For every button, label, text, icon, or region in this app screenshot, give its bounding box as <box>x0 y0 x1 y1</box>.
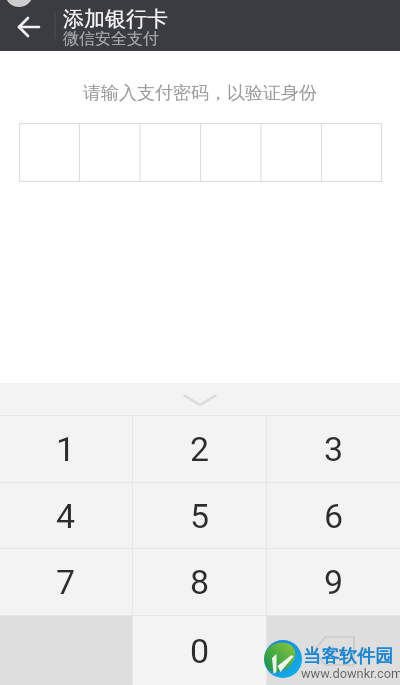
button[interactable]: Password digit 5 <box>260 123 321 182</box>
button[interactable]: 2 <box>133 416 266 482</box>
staticText: 6 <box>324 496 344 536</box>
staticText: 9 <box>324 562 344 602</box>
staticText: 3 <box>324 429 344 469</box>
staticText: 0 <box>190 631 210 671</box>
button[interactable]: 4 <box>0 483 132 548</box>
button[interactable]: 8 <box>133 549 266 615</box>
button[interactable]: Password digit 6 <box>321 123 382 182</box>
staticText: 7 <box>56 562 76 602</box>
button[interactable]: 1 <box>0 416 132 482</box>
button[interactable]: Password digit 4 <box>199 123 260 182</box>
button[interactable]: 0 <box>133 616 266 685</box>
staticText: 添加银行卡 <box>63 6 168 32</box>
button[interactable]: Password digit 2 <box>79 123 139 182</box>
button[interactable]: 7 <box>0 549 132 615</box>
button[interactable]: 5 <box>133 483 266 548</box>
button[interactable]: 9 <box>267 549 400 615</box>
staticText: 当客软件园 <box>303 645 393 668</box>
staticText: www.downkr.com <box>301 666 400 681</box>
button[interactable]: Back <box>0 0 56 51</box>
staticText: 微信安全支付 <box>63 29 159 49</box>
staticText: 4 <box>56 496 76 536</box>
staticText: 5 <box>190 496 210 536</box>
button[interactable]: Password digit 1 <box>19 123 79 182</box>
button[interactable]: Delete <box>267 616 400 685</box>
button[interactable]: Password digit 3 <box>139 123 199 182</box>
button[interactable]: 3 <box>267 416 400 482</box>
staticText: 1 <box>56 429 76 469</box>
staticText: 8 <box>190 562 210 602</box>
staticText: 请输入支付密码，以验证身份 <box>0 82 400 105</box>
button[interactable]: 6 <box>267 483 400 548</box>
staticText: 2 <box>190 429 210 469</box>
